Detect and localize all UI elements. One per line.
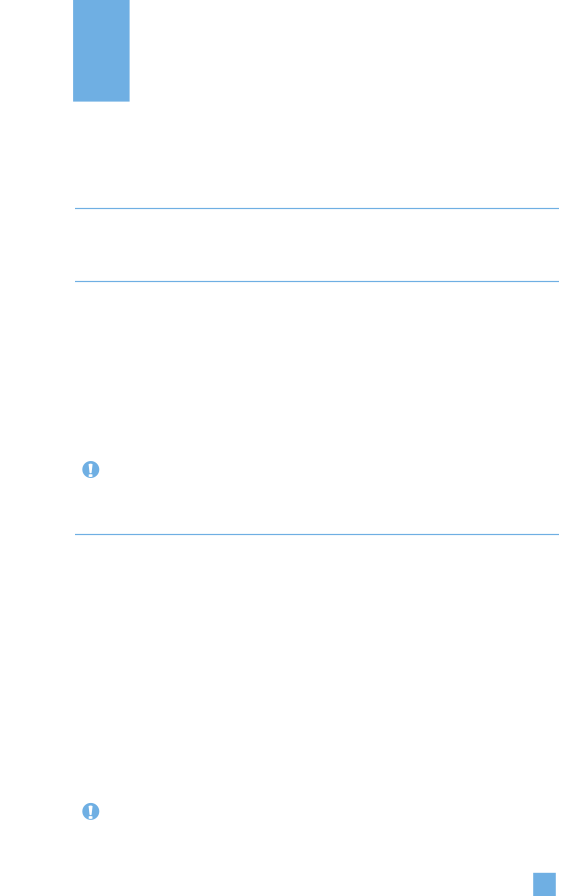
button[interactable]: Thumbnail — [533, 873, 556, 896]
button[interactable]: Lead image — [73, 0, 130, 102]
button[interactable]: Important note — [82, 803, 99, 820]
button[interactable]: Important note — [82, 461, 99, 478]
